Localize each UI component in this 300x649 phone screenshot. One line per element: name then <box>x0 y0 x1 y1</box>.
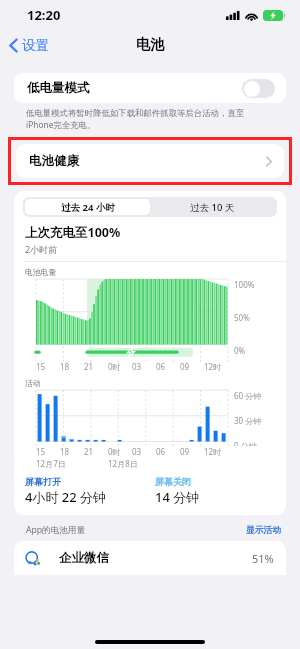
staticText: 03 <box>132 446 142 457</box>
staticText: 09 <box>180 446 190 457</box>
staticText: 12月7日 <box>36 458 66 469</box>
staticText: 电池 <box>136 36 164 54</box>
staticText: 显示活动 <box>246 525 282 536</box>
staticText: 0% <box>234 345 246 356</box>
staticText: 15 <box>36 361 46 372</box>
button[interactable]: 过去 24 小时 <box>25 199 150 215</box>
staticText: 过去 24 小时 <box>61 201 115 214</box>
staticText: 电池电量 <box>25 267 57 277</box>
staticText: 03 <box>132 361 142 372</box>
staticText: 12时 <box>204 361 222 372</box>
staticText: 21 <box>84 446 94 457</box>
staticText: 低电量模式将暂时降低如下载和邮件抓取等后台活动，直至 <box>26 108 245 119</box>
staticText: 50% <box>234 312 250 323</box>
button[interactable]: 低电量模式开关 <box>242 79 275 98</box>
staticText: 0 分钟 <box>234 440 257 446</box>
staticText: 14 分钟 <box>155 488 200 506</box>
staticText: 企业微信 <box>59 550 109 566</box>
staticText: 12时 <box>204 446 222 457</box>
staticText: 过去 10 天 <box>190 201 235 214</box>
button[interactable]: 设置 <box>0 32 59 59</box>
staticText: 4小时 22 分钟 <box>25 488 107 506</box>
staticText: 12:20 <box>27 6 61 24</box>
staticText: 屏幕关闭 <box>155 476 191 487</box>
button[interactable]: 低电量模式 <box>14 73 286 103</box>
staticText: App的电池用量 <box>26 524 86 536</box>
staticText: 0时 <box>108 361 121 372</box>
staticText: iPhone完全充电。 <box>26 119 96 130</box>
button[interactable]: 电池健康 <box>16 144 284 178</box>
staticText: 06 <box>156 361 166 372</box>
staticText: 设置 <box>22 37 49 54</box>
staticText: 51% <box>252 551 274 566</box>
staticText: 2小时前 <box>25 243 58 255</box>
staticText: 电池健康 <box>29 153 79 169</box>
staticText: 15 <box>36 446 46 457</box>
staticText: 60 分钟 <box>234 390 262 401</box>
staticText: 低电量模式 <box>27 80 90 96</box>
staticText: 18 <box>60 361 70 372</box>
staticText: 0时 <box>108 446 121 457</box>
staticText: 100% <box>234 279 255 290</box>
staticText: 09 <box>180 361 190 372</box>
button[interactable]: 过去 10 天 <box>150 199 275 215</box>
staticText: 12月8日 <box>108 458 138 469</box>
staticText: 活动 <box>25 378 41 388</box>
button[interactable]: 显示活动 <box>246 525 282 536</box>
button[interactable]: 企业微信 <box>14 541 286 575</box>
staticText: 18 <box>60 446 70 457</box>
staticText: 屏幕打开 <box>25 476 61 487</box>
staticText: 上次充电至100% <box>25 224 121 241</box>
staticText: 30 分钟 <box>234 415 262 426</box>
staticText: 06 <box>156 446 166 457</box>
staticText: 21 <box>84 361 94 372</box>
